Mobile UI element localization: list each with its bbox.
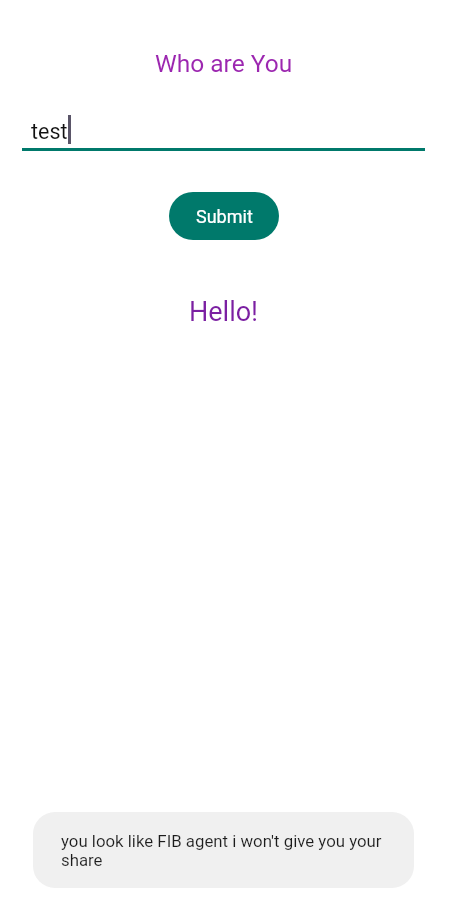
staticText: Who are You [155,49,293,78]
staticText: Hello! [189,296,259,328]
staticText: test [31,119,68,144]
staticText: Submit [196,206,253,227]
staticText: you look like FIB agent i won't give you… [61,831,386,870]
button[interactable]: Name text field [22,101,425,151]
button[interactable]: you look like FIB agent i won't give you… [33,812,414,888]
button[interactable]: Submit [169,192,279,240]
